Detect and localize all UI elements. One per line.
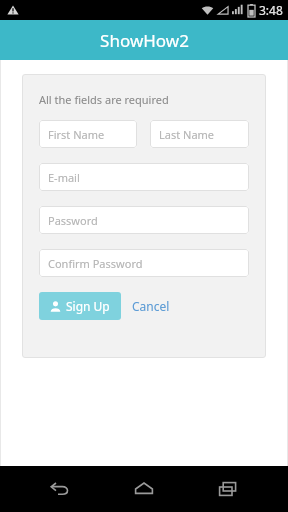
staticText: First Name [48,127,105,142]
staticText: Password [48,213,98,228]
button[interactable]: First Name [39,120,137,148]
button[interactable]: Sign Up [39,292,121,320]
button[interactable]: Cancel [130,294,172,318]
button[interactable]: Recents [204,466,252,512]
staticText: Confirm Password [48,256,143,271]
staticText: 3:48 [259,2,283,18]
staticText: All the fields are required [39,92,169,107]
button[interactable]: Home [120,466,168,512]
button[interactable]: Back [36,466,84,512]
staticText: ShowHow2 [100,29,189,52]
staticText: E-mail [48,170,80,185]
button[interactable]: Password [39,206,249,234]
button[interactable]: Confirm Password [39,249,249,277]
staticText: Last Name [159,127,215,142]
staticText: Cancel [132,298,170,314]
button[interactable]: E-mail [39,163,249,191]
button[interactable]: Last Name [150,120,249,148]
staticText: Sign Up [66,298,110,314]
